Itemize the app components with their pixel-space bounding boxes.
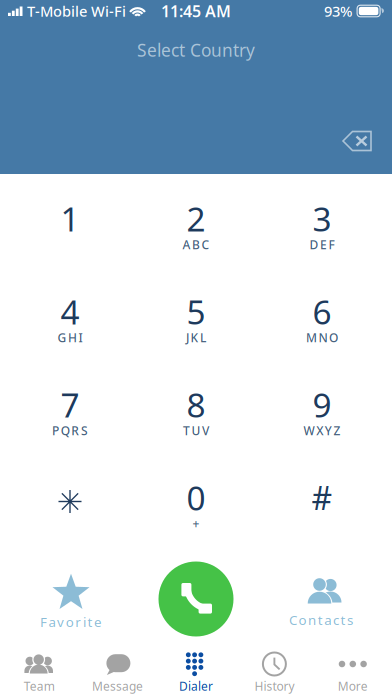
staticText: 6 [312,289,331,334]
button[interactable]: 5 [133,267,259,360]
button[interactable]: 1 [7,174,133,267]
staticText: GHI [57,329,83,345]
staticText: JKL [186,329,206,345]
button[interactable]: Select Country [0,38,392,62]
staticText: TUV [183,422,209,438]
button[interactable]: Dialer [157,648,235,696]
button[interactable]: Favorite [12,563,130,647]
button[interactable]: Team [0,648,78,696]
button[interactable]: Delete [336,124,380,158]
button[interactable]: 8 [133,360,259,453]
staticText: Dialer [179,678,213,694]
staticText: T-Mobile Wi-Fi [27,1,126,21]
staticText: MNO [306,329,338,345]
staticText: Message [92,678,143,694]
staticText: 2 [186,196,205,241]
button[interactable]: 0 [133,453,259,546]
button[interactable]: 7 [7,360,133,453]
staticText: 3 [312,196,331,241]
button[interactable]: 6 [259,267,385,360]
staticText: Team [24,678,55,694]
staticText: Contacts [289,611,353,629]
button[interactable]: Contacts [262,563,380,647]
staticText: 5 [186,289,205,334]
staticText: 7 [60,382,79,427]
staticText: 0 [186,475,205,520]
button[interactable]: Call [154,563,238,647]
staticText: 4 [60,289,79,334]
staticText: ABC [182,236,210,252]
button[interactable]: 4 [7,267,133,360]
staticText: 93% [324,1,352,21]
staticText: History [254,678,294,694]
staticText: + [192,515,199,531]
button[interactable]: More [314,648,392,696]
staticText: PQRS [52,422,88,438]
staticText: WXYZ [304,422,340,438]
button[interactable]: History [235,648,314,696]
staticText: Favorite [40,613,102,631]
button[interactable]: 3 [259,174,385,267]
staticText: 1 [60,196,79,241]
staticText: DEF [309,236,335,252]
button[interactable]: Message [78,648,157,696]
button[interactable]: 2 [133,174,259,267]
staticText: 8 [186,382,205,427]
button[interactable]: 9 [259,360,385,453]
staticText: # [311,476,332,519]
staticText: Select Country [137,38,255,61]
staticText: More [338,678,368,694]
button[interactable]: # [259,453,385,546]
staticText: 9 [312,382,331,427]
button[interactable] [7,453,133,546]
staticText: 11:45 AM [161,0,231,22]
